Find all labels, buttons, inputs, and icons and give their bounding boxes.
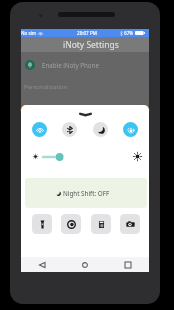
staticText: iNoty Settings — [63, 39, 119, 51]
button[interactable]: Camera — [120, 214, 140, 234]
staticText: Enable iNoty Phone — [42, 61, 99, 69]
staticText: 20:07 PM — [77, 30, 97, 36]
button[interactable]: Rotation lock — [123, 122, 138, 137]
button[interactable]: Do not disturb — [93, 122, 108, 137]
button[interactable]: Recents — [121, 258, 135, 272]
staticText: Night Shift: OFF — [63, 189, 110, 198]
button[interactable]: Back — [35, 258, 49, 272]
button[interactable]: Home — [78, 258, 92, 272]
button[interactable]: Wi-Fi — [32, 122, 47, 137]
staticText: 67% — [124, 30, 134, 36]
staticText: No sim — [21, 30, 37, 36]
button[interactable]: Timer — [61, 214, 81, 234]
button[interactable]: Night Shift: OFF — [25, 178, 147, 208]
button[interactable]: Calculator — [91, 214, 111, 234]
button[interactable]: Flashlight — [32, 214, 52, 234]
staticText: Personalization — [24, 83, 68, 91]
button[interactable]: Bluetooth — [62, 122, 77, 137]
